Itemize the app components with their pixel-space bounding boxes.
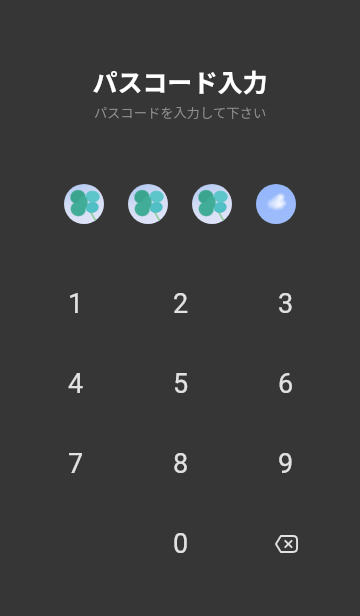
staticText: 4	[68, 368, 84, 400]
staticText: 5	[173, 368, 189, 400]
staticText: 8	[173, 448, 189, 480]
staticText: 3	[278, 288, 294, 320]
button[interactable]: 7	[23, 424, 128, 504]
button[interactable]: 9	[233, 424, 338, 504]
staticText: 1	[68, 288, 84, 320]
staticText: 2	[173, 288, 189, 320]
button[interactable]: 2	[128, 264, 233, 344]
button[interactable]: 1	[23, 264, 128, 344]
button[interactable]: 4	[23, 344, 128, 424]
staticText: パスコード入力	[0, 63, 360, 99]
button[interactable]: Backspace	[233, 504, 338, 584]
button[interactable]: 5	[128, 344, 233, 424]
staticText: 7	[68, 448, 84, 480]
staticText: 6	[278, 368, 294, 400]
button[interactable]: 3	[233, 264, 338, 344]
staticText: 0	[173, 528, 189, 560]
staticText: 9	[278, 448, 294, 480]
button[interactable]: 6	[233, 344, 338, 424]
button[interactable]: 0	[128, 504, 233, 584]
button[interactable]: 8	[128, 424, 233, 504]
staticText: パスコードを入力して下さい	[0, 103, 360, 122]
